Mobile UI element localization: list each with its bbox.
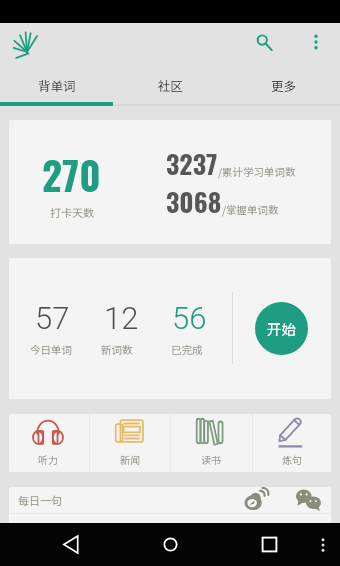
button[interactable]: Share to WeChat <box>295 487 321 512</box>
staticText: /掌握单词数 <box>222 202 279 217</box>
staticText: 炼句 <box>282 452 302 466</box>
staticText: 新闻 <box>120 452 140 466</box>
staticText: 新词数 <box>101 342 133 357</box>
staticText: 读书 <box>201 452 221 466</box>
button[interactable]: 听力 <box>9 414 88 472</box>
button[interactable]: 炼句 <box>252 414 331 472</box>
button[interactable]: Back <box>56 530 84 558</box>
button[interactable]: More options <box>298 24 334 60</box>
button[interactable]: 开始 <box>255 302 308 355</box>
staticText: 3068 <box>166 182 222 221</box>
staticText: /累计学习单词数 <box>218 164 296 179</box>
staticText: 3237 <box>166 144 218 183</box>
staticText: 56 <box>172 300 207 336</box>
staticText: 12 <box>104 300 139 336</box>
button[interactable]: App logo <box>13 31 41 59</box>
staticText: 每日一句 <box>18 492 62 508</box>
staticText: 开始 <box>267 318 296 339</box>
button[interactable]: 新闻 <box>90 414 170 472</box>
staticText: 已完成 <box>171 342 203 357</box>
staticText: 更多 <box>271 76 297 94</box>
staticText: 社区 <box>158 76 184 94</box>
button[interactable]: Menu <box>314 536 332 554</box>
button[interactable]: Home <box>156 530 184 558</box>
button[interactable]: 更多 <box>227 69 340 100</box>
staticText: 背单词 <box>38 76 76 94</box>
button[interactable]: 读书 <box>171 414 251 472</box>
button[interactable]: Share to Weibo <box>243 487 269 513</box>
staticText: 57 <box>35 300 70 336</box>
button[interactable]: 社区 <box>114 69 227 100</box>
button[interactable]: Search <box>246 24 282 60</box>
staticText: 今日单词 <box>30 342 72 357</box>
button[interactable]: Recents <box>255 530 283 558</box>
button[interactable]: 背单词 <box>0 69 114 100</box>
staticText: 听力 <box>38 452 58 466</box>
staticText: 打卡天数 <box>50 204 94 220</box>
staticText: 270 <box>42 145 101 203</box>
